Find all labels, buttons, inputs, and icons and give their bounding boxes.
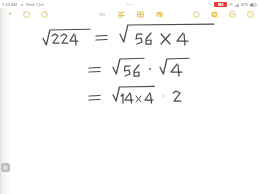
staticText: REC xyxy=(218,3,224,7)
button[interactable]: Pen tool xyxy=(4,10,13,19)
staticText: 1:50 AM xyxy=(2,2,18,7)
button[interactable]: Insert table xyxy=(136,10,145,19)
button[interactable]: Text alignment xyxy=(117,10,126,19)
button[interactable]: Timer xyxy=(192,10,201,19)
button[interactable]: More options xyxy=(246,10,255,19)
button[interactable]: Page thumbnail xyxy=(1,163,10,172)
staticText: Aa xyxy=(99,11,106,18)
button[interactable]: Undo xyxy=(22,10,31,19)
button[interactable]: Insert image xyxy=(155,10,164,19)
staticText: 47% xyxy=(241,2,248,7)
staticText: Wed 3 Jul xyxy=(26,2,44,7)
button[interactable]: Aa xyxy=(98,10,107,19)
button[interactable]: Redo xyxy=(40,10,49,19)
button[interactable]: Record xyxy=(210,10,219,19)
button[interactable]: Zoom out xyxy=(228,10,237,19)
